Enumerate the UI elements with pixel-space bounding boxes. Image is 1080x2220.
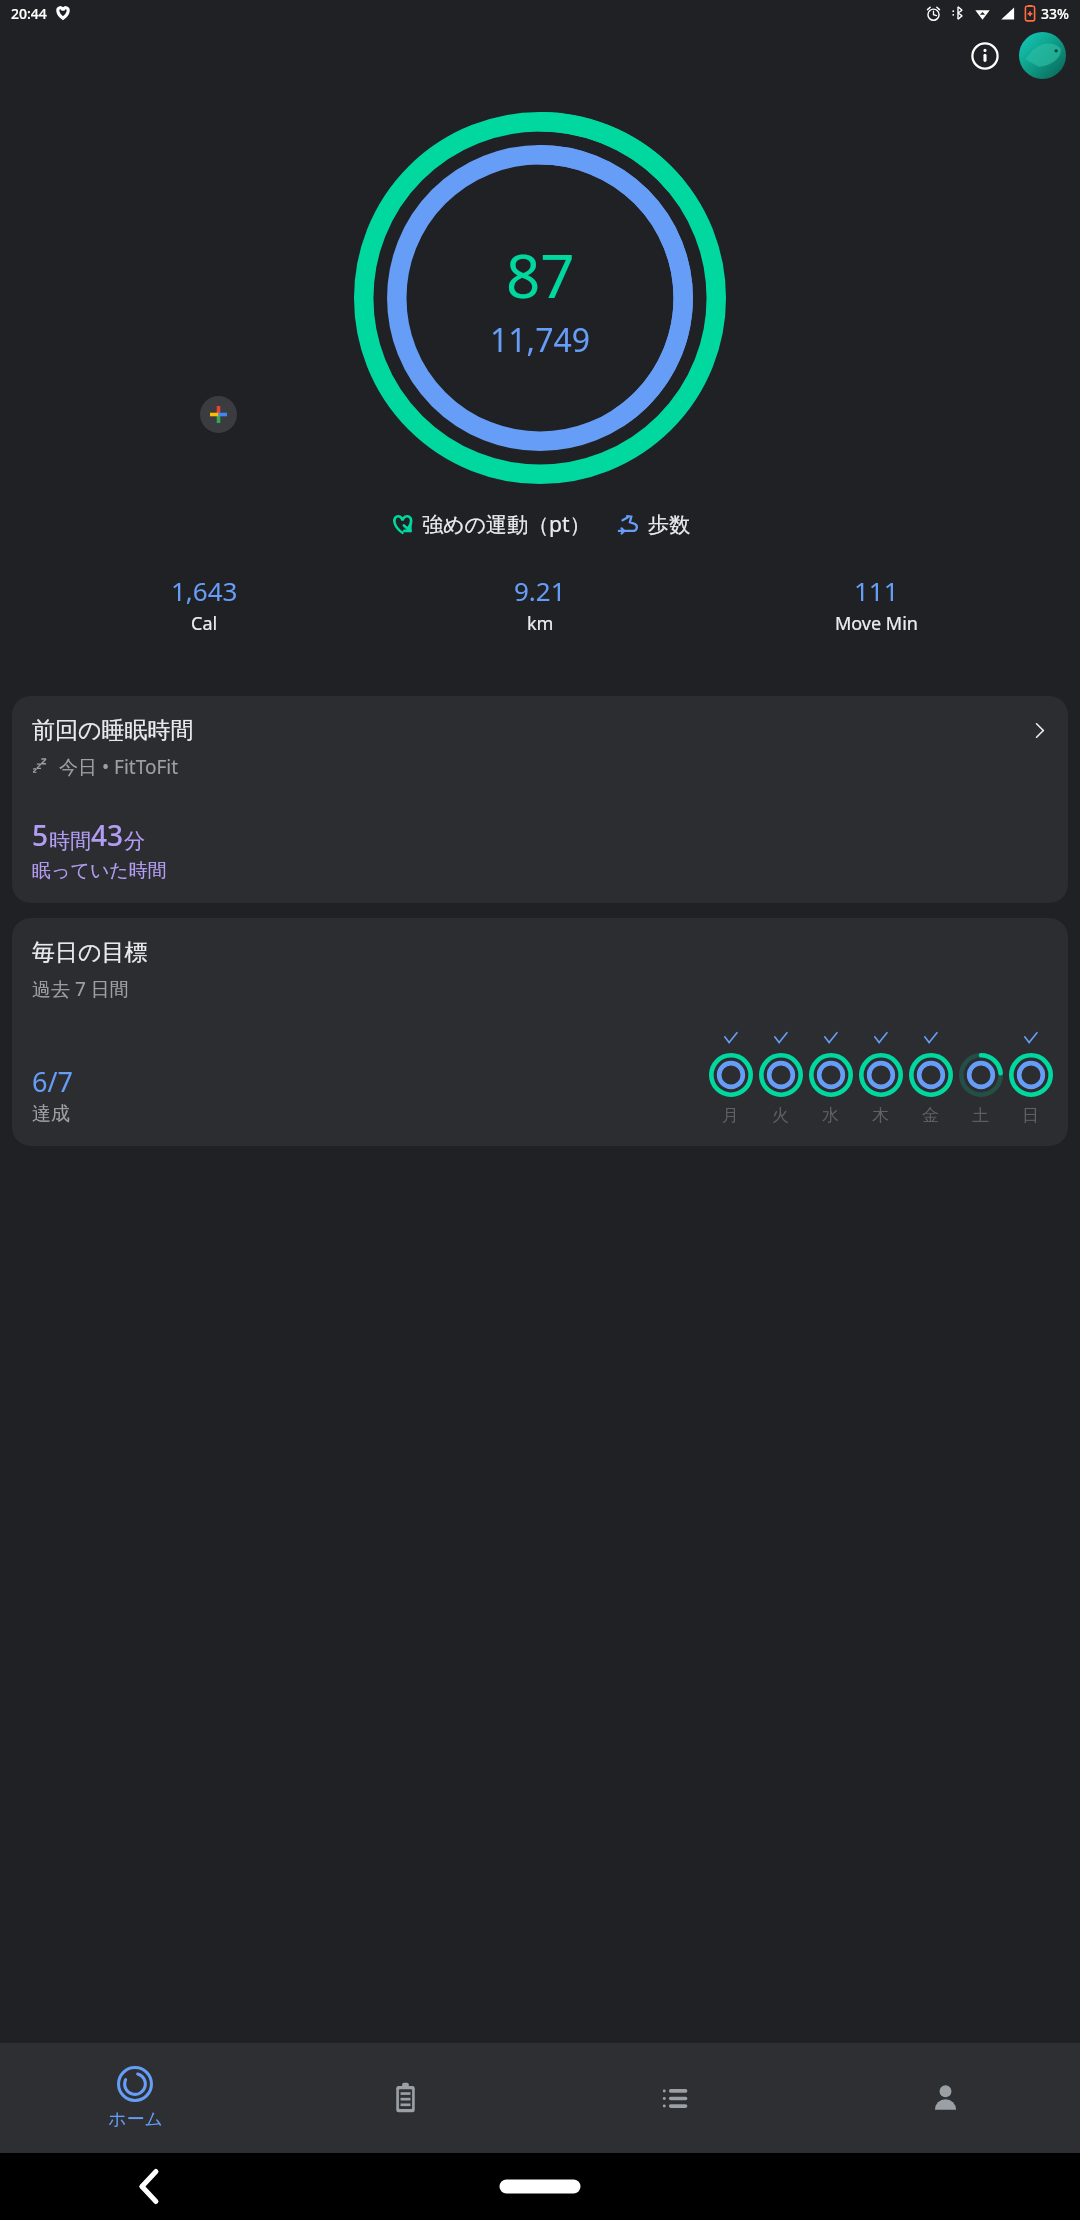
button[interactable]: Profile: [1019, 32, 1066, 79]
button[interactable]: Information: [962, 33, 1008, 79]
staticText: 火: [772, 1105, 789, 1126]
button[interactable]: 111: [708, 573, 1044, 636]
staticText: 達成: [32, 1102, 70, 1126]
button[interactable]: 1,643: [36, 573, 372, 636]
button[interactable]: 毎日の目標: [12, 918, 1068, 1146]
staticText: 時間: [49, 828, 91, 854]
staticText: km: [527, 611, 554, 636]
staticText: 20:44: [11, 4, 47, 23]
button[interactable]: Journal: [270, 2043, 540, 2153]
button[interactable]: ホーム: [0, 2043, 270, 2153]
staticText: 11,749: [490, 318, 591, 362]
button[interactable]: 9.21: [372, 573, 708, 636]
staticText: ホーム: [108, 2108, 163, 2131]
button[interactable]: Profile: [810, 2043, 1080, 2153]
staticText: 過去 7 日間: [32, 976, 129, 1002]
staticText: 111: [854, 573, 899, 608]
staticText: 水: [822, 1105, 839, 1126]
staticText: Move Min: [835, 611, 918, 636]
staticText: 6/7: [32, 1063, 73, 1100]
staticText: 月: [722, 1105, 739, 1126]
staticText: 日: [1022, 1105, 1039, 1126]
staticText: 毎日の目標: [32, 938, 148, 967]
button[interactable]: Add activity: [200, 396, 237, 433]
staticText: 歩数: [648, 512, 690, 538]
staticText: 87: [506, 234, 575, 316]
button[interactable]: 前回の睡眠時間: [12, 696, 1068, 903]
staticText: 1,643: [171, 573, 238, 608]
staticText: 33%: [1041, 4, 1069, 23]
staticText: 眠っていた時間: [32, 859, 167, 883]
staticText: 強めの運動（pt）: [422, 510, 591, 539]
staticText: Cal: [191, 611, 218, 636]
staticText: 金: [922, 1105, 939, 1126]
staticText: 今日 • FitToFit: [59, 754, 178, 780]
staticText: 5: [32, 816, 49, 854]
staticText: 前回の睡眠時間: [32, 716, 1029, 745]
button[interactable]: Browse: [540, 2043, 810, 2153]
staticText: 分: [124, 828, 145, 854]
staticText: 9.21: [514, 573, 566, 608]
staticText: 土: [972, 1105, 989, 1126]
staticText: 43: [91, 816, 124, 854]
staticText: 木: [872, 1105, 889, 1126]
